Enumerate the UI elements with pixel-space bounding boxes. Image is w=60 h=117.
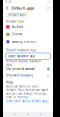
button[interactable]: Samsung Internet	[3, 38, 53, 45]
staticText: Apps can ask to be your default. Your ch…	[6, 85, 48, 99]
staticText: Use personal assistant	[6, 67, 35, 71]
staticText: Learn more about default apps	[6, 99, 48, 103]
button[interactable]: Device assistance app	[6, 53, 50, 59]
staticText: Default digital assistant app	[6, 59, 41, 67]
staticText: Device assistance app	[8, 54, 35, 58]
button[interactable]: Use personal assistant	[3, 66, 53, 72]
button[interactable]: Back	[5, 4, 10, 12]
button[interactable]: YouTube	[3, 23, 53, 31]
staticText: Informed browsing	[6, 74, 33, 77]
button[interactable]: Learn more about default apps	[6, 99, 48, 103]
staticText: Help	[6, 81, 13, 84]
staticText: Default apps	[11, 5, 34, 11]
staticText: Samsung Internet	[12, 40, 36, 43]
staticText: Chrome	[12, 32, 23, 36]
button[interactable]: Account	[46, 5, 51, 11]
staticText: Digital assistant app	[6, 48, 36, 52]
button[interactable]: Default apps	[6, 12, 28, 17]
staticText: 9:41	[5, 0, 12, 4]
staticText: YouTube	[12, 25, 24, 29]
staticText: Default apps	[8, 13, 25, 16]
staticText: Browser app	[6, 20, 24, 23]
button[interactable]: Informed browsing	[3, 72, 53, 79]
button[interactable]: Chrome	[3, 31, 53, 38]
